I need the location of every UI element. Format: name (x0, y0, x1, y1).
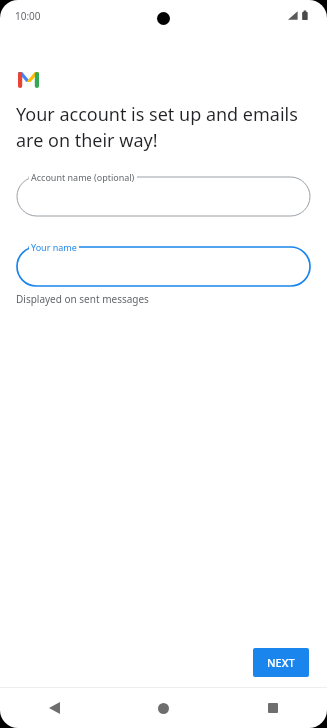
staticText: Account name (optional) (31, 171, 135, 183)
staticText: NEXT (267, 655, 295, 670)
button[interactable]: Home (109, 688, 218, 728)
button[interactable]: Account name (optional) (17, 171, 310, 216)
button[interactable]: Recent apps (218, 688, 327, 728)
staticText: Your name (31, 241, 77, 253)
button[interactable]: NEXT (253, 648, 309, 677)
staticText: Displayed on sent messages (16, 292, 149, 306)
staticText: 10:00 (15, 9, 41, 23)
button[interactable]: Back (0, 688, 109, 728)
staticText: Your account is set up and emails are on… (16, 102, 307, 152)
button[interactable]: Your name (17, 241, 310, 286)
